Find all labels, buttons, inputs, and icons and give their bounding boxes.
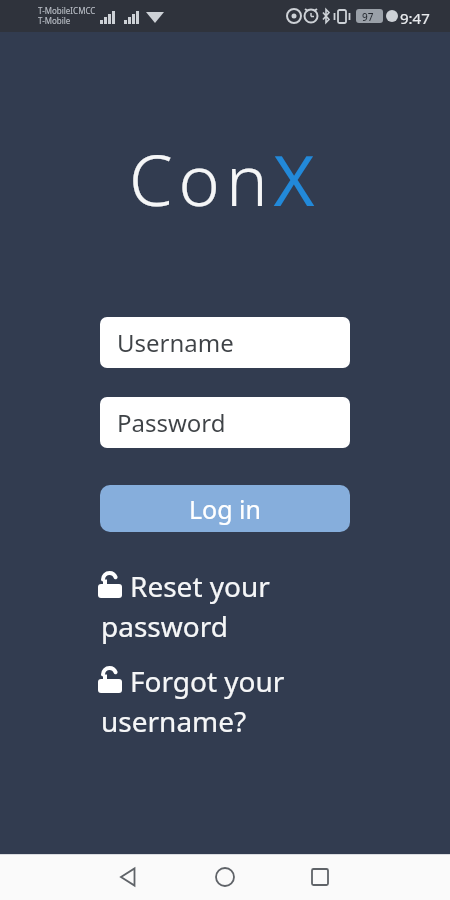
staticText: Password (117, 406, 226, 439)
staticText: ConX (129, 131, 321, 226)
button[interactable] (99, 854, 159, 900)
staticText: Username (117, 326, 234, 359)
button[interactable]: Password (100, 397, 350, 448)
staticText: T-MobileICMCC (38, 5, 96, 16)
staticText: T-Mobile (38, 15, 71, 26)
button[interactable]: Reset your (98, 567, 238, 605)
staticText: Reset your (130, 567, 270, 605)
staticText: password (101, 607, 228, 645)
staticText: 9:47 (400, 8, 430, 28)
staticText: Log in (189, 492, 262, 526)
staticText: 97 (362, 10, 374, 24)
button[interactable] (290, 854, 350, 900)
button[interactable]: Username (100, 317, 350, 368)
button[interactable]: Forgot your (98, 662, 253, 700)
staticText: username? (101, 702, 247, 740)
button[interactable] (195, 854, 255, 900)
button[interactable]: Log in (100, 485, 350, 532)
staticText: Forgot your (130, 662, 285, 700)
